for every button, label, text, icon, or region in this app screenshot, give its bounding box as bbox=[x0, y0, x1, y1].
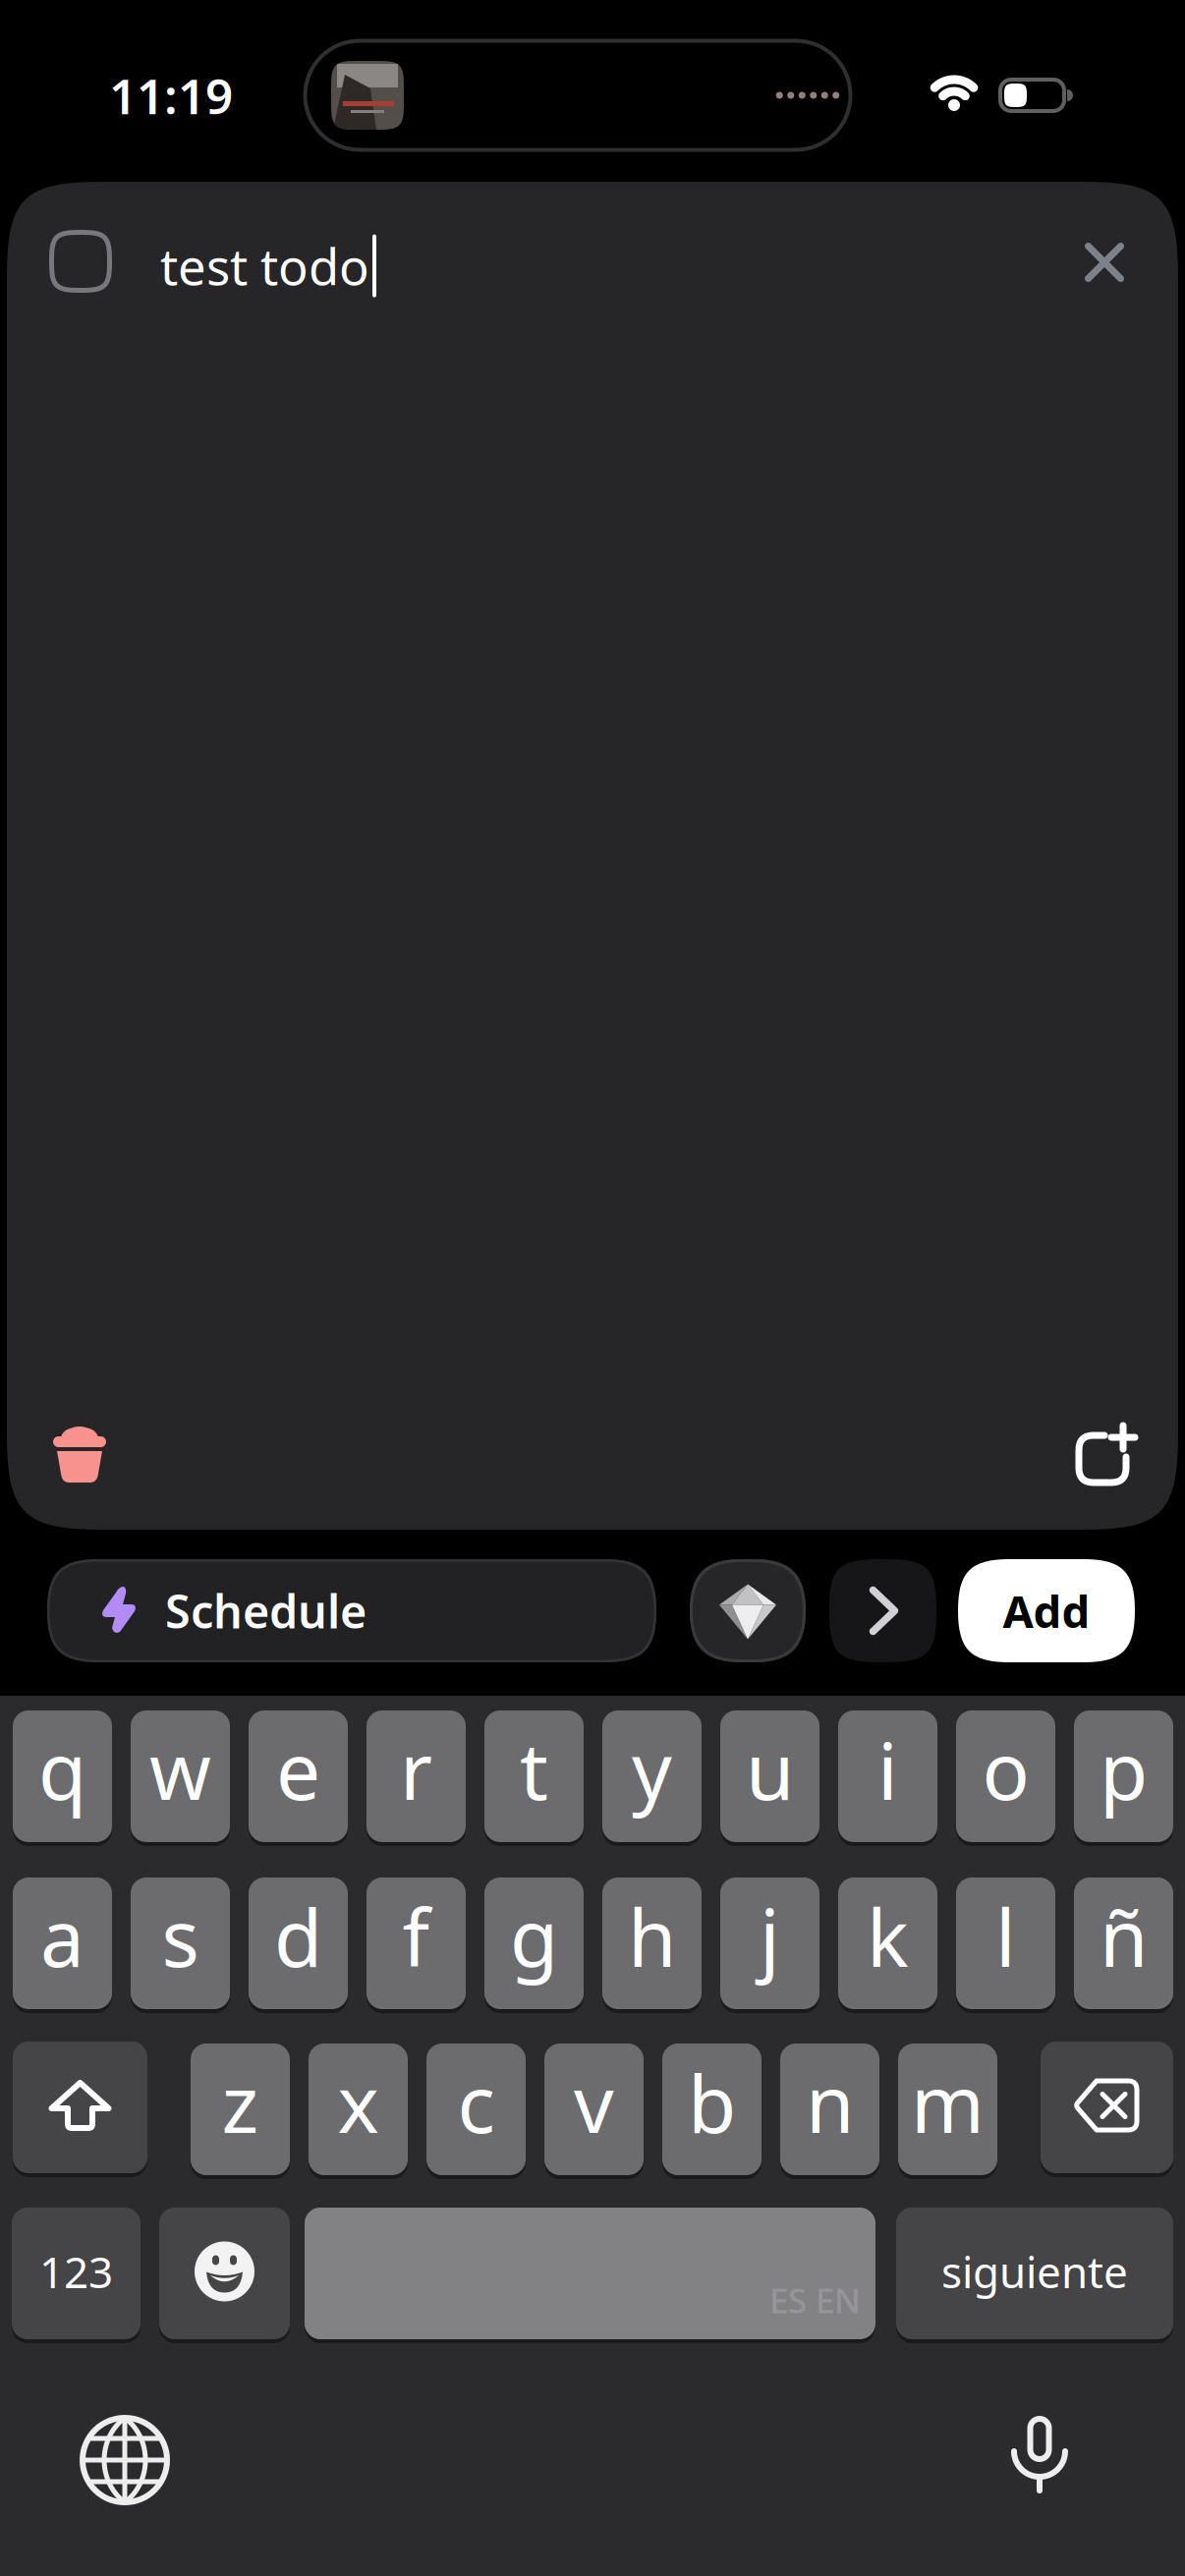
staticText: e bbox=[276, 1717, 320, 1822]
staticText: 11:19 bbox=[109, 63, 233, 127]
staticText: t bbox=[520, 1717, 548, 1822]
button[interactable]: ES EN bbox=[305, 2208, 875, 2343]
staticText: u bbox=[746, 1717, 794, 1822]
button[interactable]: a bbox=[13, 1877, 112, 2013]
button[interactable] bbox=[13, 2042, 147, 2177]
button[interactable]: p bbox=[1074, 1710, 1173, 1846]
button[interactable]: m bbox=[898, 2044, 997, 2179]
button[interactable]: v bbox=[544, 2044, 644, 2179]
staticText: r bbox=[400, 1717, 432, 1822]
button[interactable] bbox=[80, 2415, 170, 2505]
button[interactable]: y bbox=[602, 1710, 702, 1846]
staticText: q bbox=[38, 1717, 86, 1822]
staticText: x bbox=[338, 2050, 379, 2155]
button[interactable]: b bbox=[662, 2044, 762, 2179]
button[interactable]: g bbox=[484, 1877, 584, 2013]
button[interactable] bbox=[1041, 2042, 1173, 2177]
button[interactable]: Add bbox=[958, 1559, 1135, 1662]
staticText: j bbox=[760, 1884, 780, 1989]
button[interactable] bbox=[1011, 2416, 1069, 2491]
button[interactable]: d bbox=[249, 1877, 348, 2013]
button[interactable] bbox=[1084, 242, 1125, 282]
button[interactable]: r bbox=[367, 1710, 466, 1846]
staticText: l bbox=[995, 1884, 1016, 1989]
staticText: f bbox=[402, 1884, 430, 1989]
button[interactable]: e bbox=[249, 1710, 348, 1846]
button[interactable] bbox=[1078, 1426, 1135, 1483]
button[interactable]: Schedule bbox=[47, 1559, 656, 1662]
staticText: c bbox=[457, 2050, 495, 2155]
staticText: s bbox=[162, 1884, 199, 1989]
staticText: m bbox=[911, 2050, 985, 2155]
staticText: ñ bbox=[1100, 1884, 1148, 1989]
button[interactable] bbox=[49, 230, 112, 293]
button[interactable]: q bbox=[13, 1710, 112, 1846]
button[interactable]: t bbox=[484, 1710, 584, 1846]
staticText: Schedule bbox=[165, 1580, 367, 1641]
button[interactable]: ñ bbox=[1074, 1877, 1173, 2013]
button[interactable]: o bbox=[956, 1710, 1055, 1846]
staticText: i bbox=[877, 1717, 898, 1822]
button[interactable]: c bbox=[426, 2044, 526, 2179]
button[interactable] bbox=[829, 1559, 936, 1662]
button[interactable] bbox=[690, 1559, 806, 1662]
staticText: z bbox=[222, 2050, 259, 2155]
staticText: y bbox=[632, 1717, 672, 1822]
button[interactable]: k bbox=[838, 1877, 937, 2013]
staticText: a bbox=[40, 1884, 85, 1989]
button[interactable]: i bbox=[838, 1710, 937, 1846]
button[interactable]: s bbox=[131, 1877, 230, 2013]
button[interactable]: 123 bbox=[12, 2208, 141, 2343]
button[interactable]: u bbox=[720, 1710, 819, 1846]
button[interactable]: siguiente bbox=[896, 2208, 1173, 2343]
staticText: test todo bbox=[160, 233, 369, 299]
staticText: k bbox=[867, 1884, 909, 1989]
button[interactable]: x bbox=[309, 2044, 408, 2179]
button[interactable] bbox=[53, 1427, 106, 1483]
button[interactable]: z bbox=[191, 2044, 290, 2179]
button[interactable]: h bbox=[602, 1877, 702, 2013]
staticText: g bbox=[510, 1884, 558, 1989]
button[interactable]: w bbox=[131, 1710, 230, 1846]
staticText: v bbox=[574, 2050, 614, 2155]
staticText: p bbox=[1100, 1717, 1148, 1822]
staticText: w bbox=[149, 1717, 211, 1822]
staticText: Add bbox=[1003, 1581, 1090, 1640]
button[interactable]: l bbox=[956, 1877, 1055, 2013]
staticText: n bbox=[806, 2050, 854, 2155]
staticText: o bbox=[982, 1717, 1029, 1822]
staticText: ES EN bbox=[769, 2277, 861, 2323]
staticText: 123 bbox=[39, 2243, 113, 2300]
staticText: siguiente bbox=[941, 2243, 1128, 2300]
staticText: h bbox=[628, 1884, 676, 1989]
button[interactable] bbox=[7, 182, 1178, 1530]
staticText: d bbox=[274, 1884, 322, 1989]
button[interactable]: j bbox=[720, 1877, 819, 2013]
button[interactable] bbox=[159, 2208, 290, 2343]
button[interactable]: f bbox=[367, 1877, 466, 2013]
staticText: b bbox=[688, 2050, 736, 2155]
button[interactable]: n bbox=[780, 2044, 879, 2179]
